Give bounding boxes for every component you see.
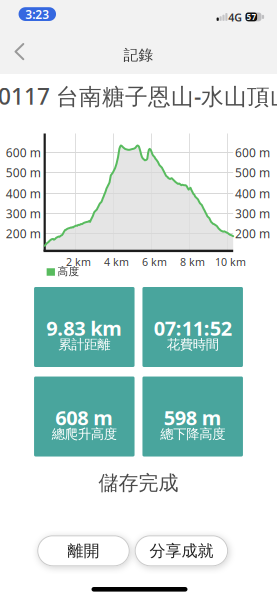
button[interactable]: Back — [12, 43, 26, 61]
staticText: 4G — [228, 10, 242, 24]
staticText: 4 km — [104, 255, 129, 269]
button[interactable]: 離開 — [37, 535, 130, 566]
button[interactable]: 分享成就 — [135, 535, 228, 566]
staticText: 總下降高度 — [160, 426, 225, 442]
staticText: 記錄 — [123, 46, 153, 64]
staticText: 300 m — [6, 205, 41, 221]
staticText: 總爬升高度 — [52, 426, 117, 442]
staticText: 花費時間 — [167, 336, 219, 353]
staticText: 598 m — [164, 404, 222, 431]
staticText: 儲存完成 — [98, 471, 178, 495]
staticText: 0117 台南糖子恩山-水山頂山 — [0, 81, 277, 111]
staticText: 500 m — [6, 164, 41, 180]
staticText: 400 m — [235, 185, 270, 201]
staticText: 9.83 km — [46, 315, 122, 341]
staticText: 200 m — [6, 225, 41, 241]
staticText: 2 km — [66, 255, 91, 269]
staticText: 500 m — [235, 164, 270, 180]
staticText: 高度 — [57, 265, 79, 278]
staticText: 600 m — [235, 144, 270, 160]
staticText: 07:11:52 — [154, 315, 232, 341]
staticText: 608 m — [55, 404, 113, 431]
staticText: 離開 — [67, 541, 99, 561]
staticText: 累計距離 — [58, 336, 110, 353]
staticText: 57 — [246, 12, 256, 22]
staticText: 分享成就 — [149, 541, 213, 561]
staticText: 200 m — [235, 225, 270, 241]
staticText: 6 km — [142, 255, 167, 269]
staticText: 10 km — [215, 255, 246, 269]
staticText: 400 m — [6, 185, 41, 201]
staticText: 3:23 — [25, 6, 49, 22]
staticText: 600 m — [6, 144, 41, 160]
staticText: 300 m — [235, 205, 270, 221]
staticText: 8 km — [180, 255, 205, 269]
